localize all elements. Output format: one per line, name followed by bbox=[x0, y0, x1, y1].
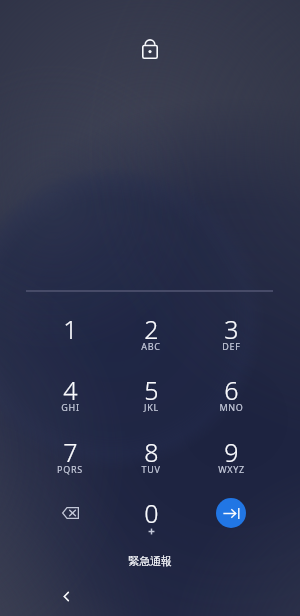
staticText: 6 bbox=[224, 373, 239, 407]
button[interactable]: Delete bbox=[30, 483, 110, 543]
staticText: 7 bbox=[63, 435, 78, 469]
button[interactable]: 0 bbox=[111, 483, 191, 543]
button[interactable]: 4 bbox=[30, 360, 110, 420]
staticText: ABC bbox=[141, 340, 161, 352]
button[interactable]: 2 bbox=[111, 299, 191, 359]
button[interactable]: 8 bbox=[111, 422, 191, 482]
staticText: 2 bbox=[144, 312, 159, 346]
staticText: 緊急通報 bbox=[128, 554, 172, 568]
staticText: 5 bbox=[144, 373, 159, 407]
staticText: TUV bbox=[141, 463, 161, 475]
staticText: MNO bbox=[219, 401, 244, 413]
button[interactable]: 6 bbox=[191, 360, 271, 420]
button[interactable]: 9 bbox=[191, 422, 271, 482]
button[interactable]: 緊急通報 bbox=[110, 551, 190, 571]
staticText: 0 bbox=[144, 496, 159, 530]
button[interactable]: 1 bbox=[30, 299, 110, 359]
staticText: DEF bbox=[222, 340, 241, 352]
staticText: JKL bbox=[144, 401, 159, 413]
staticText: 8 bbox=[144, 435, 159, 469]
button[interactable]: 7 bbox=[30, 422, 110, 482]
staticText: 4 bbox=[63, 373, 78, 407]
button[interactable]: Enter bbox=[216, 498, 246, 528]
staticText: PQRS bbox=[57, 463, 83, 475]
button[interactable]: 3 bbox=[191, 299, 271, 359]
staticText: WXYZ bbox=[218, 463, 245, 475]
staticText: 3 bbox=[224, 312, 239, 346]
button[interactable]: Back bbox=[52, 582, 80, 610]
staticText: 1 bbox=[63, 312, 78, 346]
staticText: 9 bbox=[224, 435, 239, 469]
button[interactable]: 5 bbox=[111, 360, 191, 420]
staticText: GHI bbox=[61, 401, 80, 413]
